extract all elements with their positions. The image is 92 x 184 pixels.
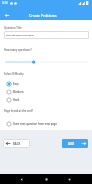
staticText: Select Difficulty: [4, 72, 24, 76]
staticText: Medium: [13, 90, 24, 94]
button[interactable]: Back: [16, 174, 26, 184]
staticText: Hard: [13, 98, 20, 102]
staticText: Easy: [13, 82, 19, 86]
button[interactable]: Home: [41, 174, 51, 184]
staticText: BACK: [13, 142, 21, 146]
staticText: Page break at the end?: [4, 109, 33, 113]
button[interactable]: Easy: [6, 80, 19, 88]
button[interactable]: Write the new mcq problem: [4, 31, 89, 39]
button[interactable]: Medium: [6, 88, 24, 96]
button[interactable]: ADD: [62, 139, 88, 148]
staticText: Create Problems: [29, 13, 57, 18]
button[interactable]: Back: [1, 9, 13, 21]
staticText: How many questions?: [4, 48, 32, 52]
button[interactable]: [0, 57, 92, 67]
button[interactable]: BACK: [3, 139, 30, 148]
staticText: Write the new mcq problem: [6, 34, 34, 37]
staticText: ADD: [68, 142, 74, 146]
staticText: Start next question from new page: [13, 122, 57, 126]
button[interactable]: Recents: [64, 174, 74, 184]
staticText: Question Title: [4, 26, 22, 30]
button[interactable]: Hard: [6, 96, 20, 104]
staticText: 5:30: [2, 1, 8, 5]
button[interactable]: Start next question from new page: [6, 120, 57, 128]
